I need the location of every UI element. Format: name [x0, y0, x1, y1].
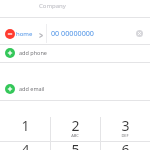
staticText: Company: [39, 2, 66, 10]
button[interactable]: 4: [0, 141, 50, 150]
button[interactable]: 3: [100, 117, 150, 141]
staticText: home: [16, 30, 33, 38]
staticText: 2: [71, 116, 80, 135]
staticText: DEF: [121, 133, 129, 138]
button[interactable]: 6: [100, 141, 150, 150]
button[interactable]: 1: [0, 117, 50, 141]
button[interactable]: 5: [50, 141, 100, 150]
button[interactable]: Clear text: [136, 30, 143, 37]
staticText: add email: [19, 85, 45, 92]
button[interactable]: 2: [50, 117, 100, 141]
staticText: 4: [21, 140, 30, 150]
button[interactable]: add email: [0, 79, 150, 98]
button[interactable]: home: [0, 17, 150, 44]
button[interactable]: Company: [0, 0, 150, 17]
staticText: 3: [121, 116, 130, 135]
staticText: 6: [121, 140, 130, 150]
staticText: ABC: [71, 133, 79, 138]
button[interactable]: add phone: [0, 43, 150, 62]
staticText: 00 00000000: [51, 28, 94, 38]
staticText: add phone: [19, 49, 47, 56]
staticText: 1: [21, 116, 30, 135]
staticText: 5: [71, 140, 80, 150]
